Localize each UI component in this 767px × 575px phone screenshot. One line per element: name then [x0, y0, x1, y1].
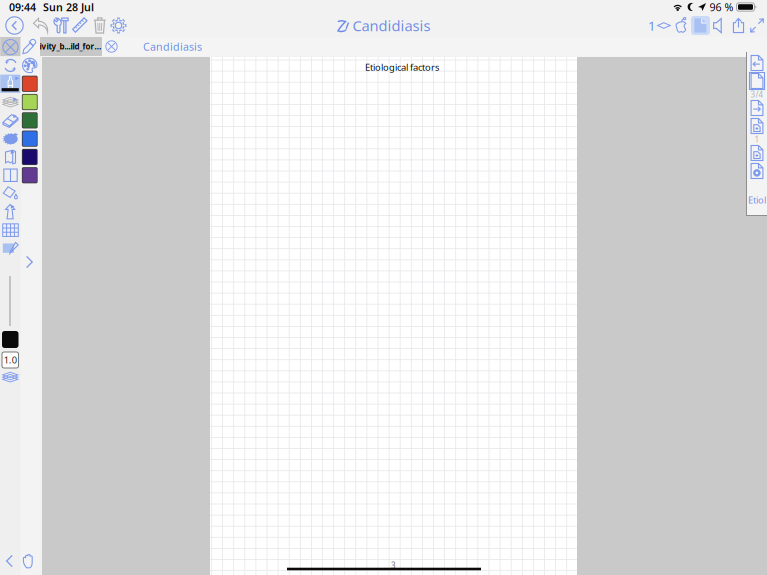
button[interactable]: Layers — [0, 93, 21, 111]
button[interactable]: Pen — [0, 75, 21, 93]
button[interactable]: Previous page — [749, 54, 764, 72]
button[interactable]: Colour swatch — [21, 129, 39, 148]
button[interactable]: Shape — [0, 203, 21, 221]
button[interactable]: Current page — [749, 72, 764, 90]
button[interactable]: Settings — [109, 14, 127, 37]
button[interactable]: Delete — [92, 14, 108, 37]
button[interactable]: Palette — [21, 56, 39, 75]
button[interactable]: Fill — [0, 184, 21, 203]
button[interactable]: Apple Pencil — [674, 14, 689, 37]
button[interactable]: Full screen — [749, 14, 764, 37]
staticText: 1 — [754, 134, 759, 145]
button[interactable]: Lasso — [0, 129, 21, 148]
button[interactable]: Rotate — [0, 56, 21, 75]
button[interactable]: Etiol — [748, 192, 766, 208]
button[interactable]: Image — [0, 239, 21, 258]
button[interactable]: Pages — [691, 14, 710, 37]
button[interactable]: Colour swatch — [21, 111, 39, 129]
button[interactable]: Candidiasis — [102, 37, 222, 56]
button[interactable]: Layers — [649, 14, 670, 37]
button[interactable]: Insert page below — [749, 144, 764, 162]
button[interactable]: Book — [0, 166, 21, 184]
button[interactable]: Note — [0, 148, 21, 166]
staticText: Etiol — [748, 194, 766, 206]
button[interactable]: ivity_b...ild_for_Ro... — [39, 37, 102, 56]
staticText: 1.0 — [4, 354, 17, 366]
button[interactable]: Close tool panel — [0, 38, 21, 56]
staticText: 3/4 — [750, 89, 763, 100]
staticText: ivity_b...ild_for_Ro... — [39, 41, 102, 52]
button[interactable]: Insert page above — [749, 117, 764, 135]
button[interactable]: Eyedropper — [21, 38, 39, 56]
button[interactable]: Back — [3, 14, 25, 37]
button[interactable]: Collapse toolbar — [0, 550, 19, 572]
button[interactable]: Colour swatch — [21, 75, 39, 93]
staticText: Etiological factors — [365, 61, 439, 73]
button[interactable]: Next page — [749, 99, 764, 117]
button[interactable]: Colour swatch — [21, 93, 39, 111]
staticText: 96 % — [709, 0, 733, 14]
button[interactable]: Stroke width 1.0 — [0, 351, 20, 369]
staticText: Candidiasis — [352, 16, 430, 35]
button[interactable]: Pan — [19, 550, 39, 572]
staticText: 3 — [391, 560, 396, 571]
button[interactable]: Table — [0, 221, 21, 239]
staticText: 09:44 — [9, 0, 36, 14]
button[interactable]: Page settings — [749, 162, 764, 180]
staticText: Candidiasis — [143, 39, 202, 54]
button[interactable]: More colours — [20, 252, 39, 272]
staticText: Pr — [14, 40, 24, 53]
button[interactable]: Pr — [0, 37, 40, 56]
button[interactable]: Stroke colour — [0, 330, 20, 349]
button[interactable]: Layers — [0, 369, 20, 385]
button[interactable]: Undo — [31, 14, 52, 37]
button[interactable]: Ruler — [71, 14, 89, 37]
button[interactable]: Audio — [713, 14, 726, 37]
button[interactable]: Share — [733, 14, 744, 37]
button[interactable]: Colour swatch — [21, 166, 39, 184]
button[interactable]: Tools — [52, 14, 70, 37]
staticText: 1 — [648, 17, 656, 34]
button[interactable]: Eraser — [0, 111, 21, 129]
staticText: Sun 28 Jul — [43, 0, 94, 14]
button[interactable]: Colour swatch — [21, 148, 39, 166]
